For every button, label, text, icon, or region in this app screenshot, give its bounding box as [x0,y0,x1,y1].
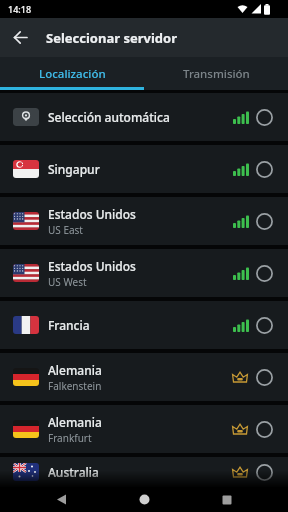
button[interactable]: Alemania [0,353,288,401]
button[interactable]: Selección automática [0,93,288,141]
staticText: Singapur [48,161,100,177]
staticText: Localización [39,66,106,82]
staticText: Seleccionar servidor [46,29,177,47]
button[interactable] [207,487,247,512]
staticText: US West [48,275,87,289]
button[interactable]: Alemania [0,405,288,453]
button[interactable]: Estados Unidos [0,249,288,297]
staticText: Australia [48,464,99,480]
staticText: Estados Unidos [48,258,136,274]
staticText: Alemania [48,362,102,378]
button[interactable]: Singapur [0,145,288,193]
button[interactable]: Australia [0,457,288,487]
button[interactable] [41,487,81,512]
staticText: Alemania [48,414,102,430]
staticText: Francia [48,317,90,333]
button[interactable]: Francia [0,301,288,349]
staticText: Falkenstein [48,379,102,393]
staticText: 14:18 [8,3,32,15]
button[interactable] [0,18,40,57]
staticText: Selección automática [48,109,170,125]
staticText: US East [48,223,83,237]
button[interactable] [124,487,164,512]
staticText: Transmisión [183,66,250,82]
button[interactable]: Transmisión [144,57,288,90]
button[interactable]: Estados Unidos [0,197,288,245]
staticText: Estados Unidos [48,206,136,222]
staticText: Frankfurt [48,431,92,445]
button[interactable]: Localización [0,57,144,90]
